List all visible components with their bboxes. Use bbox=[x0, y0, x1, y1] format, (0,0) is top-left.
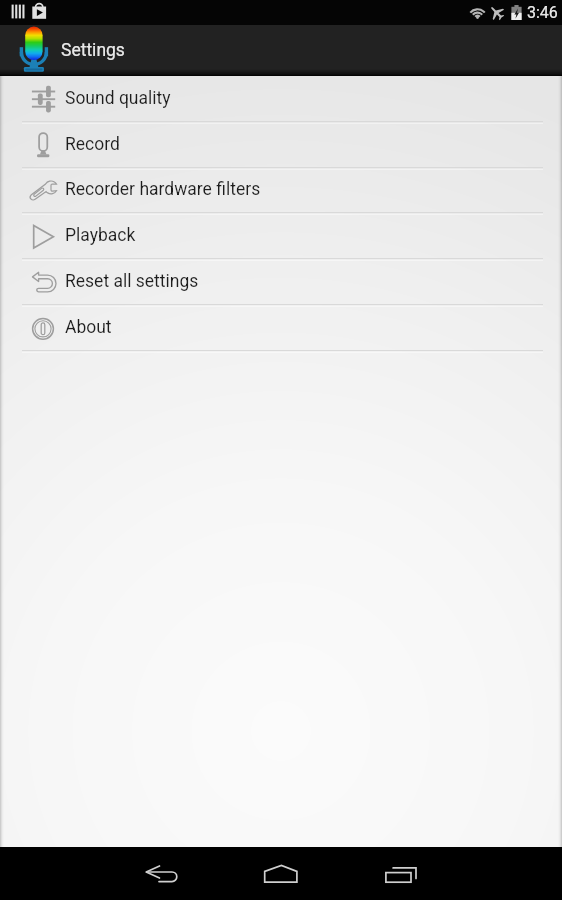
button[interactable]: Record bbox=[0, 122, 562, 168]
button[interactable]: Home bbox=[257, 847, 305, 900]
staticText: Recorder hardware filters bbox=[65, 179, 261, 200]
button[interactable]: Back bbox=[139, 847, 187, 900]
button[interactable]: Recent apps bbox=[377, 847, 425, 900]
button[interactable]: Recorder hardware filters bbox=[0, 167, 562, 213]
staticText: About bbox=[65, 317, 112, 338]
staticText: Sound quality bbox=[65, 88, 171, 109]
staticText: Record bbox=[65, 134, 120, 155]
button[interactable]: Playback bbox=[0, 213, 562, 259]
button[interactable]: About bbox=[0, 305, 562, 351]
staticText: 3:46 bbox=[527, 3, 558, 22]
staticText: Playback bbox=[65, 225, 136, 246]
button[interactable]: Sound quality bbox=[0, 76, 562, 122]
button[interactable]: Reset all settings bbox=[0, 259, 562, 305]
staticText: Settings bbox=[61, 40, 125, 61]
staticText: Reset all settings bbox=[65, 271, 199, 292]
